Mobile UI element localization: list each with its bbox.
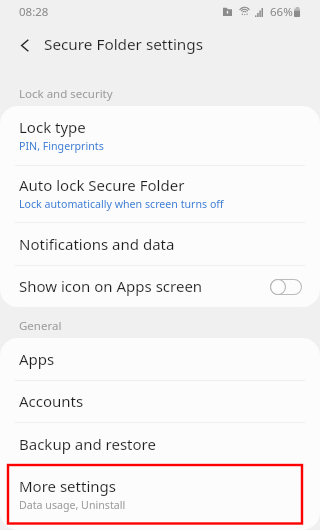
staticText: Accounts [19, 391, 84, 411]
button[interactable]: Auto lock Secure Folder [0, 166, 320, 223]
button[interactable]: Lock type [0, 106, 320, 166]
button[interactable]: More settings [0, 466, 320, 524]
staticText: Notifications and data [19, 234, 175, 254]
staticText: General [19, 318, 62, 334]
staticText: Lock type [19, 117, 86, 137]
staticText: Auto lock Secure Folder [19, 175, 185, 195]
staticText: Lock automatically when screen turns off [19, 197, 224, 212]
staticText: More settings [19, 476, 116, 496]
staticText: PIN, Fingerprints [19, 139, 104, 154]
button[interactable]: Apps [0, 338, 320, 381]
staticText: Show icon on Apps screen [19, 276, 203, 296]
staticText: 08:28 [19, 4, 49, 20]
button[interactable]: Notifications and data [0, 223, 320, 266]
staticText: Apps [19, 349, 55, 369]
button[interactable]: Navigate up [10, 30, 40, 60]
staticText: Lock and security [19, 86, 113, 102]
button[interactable]: Accounts [0, 381, 320, 423]
staticText: Backup and restore [19, 434, 156, 454]
staticText: Secure Folder settings [44, 34, 204, 55]
staticText: Data usage, Uninstall [19, 498, 126, 513]
staticText: 66% [270, 4, 293, 20]
button[interactable]: Backup and restore [0, 423, 320, 466]
button[interactable]: Show icon on Apps screen [0, 266, 320, 307]
